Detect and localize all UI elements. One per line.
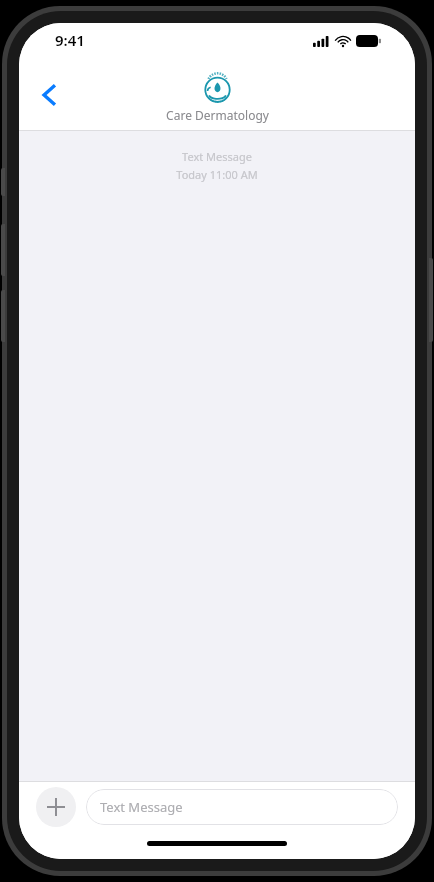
button[interactable]: Back: [27, 73, 71, 117]
button[interactable]: Care Dermatology: [166, 72, 269, 123]
button[interactable]: Add attachment: [36, 787, 76, 827]
button[interactable]: Text Message: [86, 789, 398, 825]
staticText: Text Message: [182, 149, 252, 164]
staticText: Text Message: [100, 798, 183, 816]
staticText: Care Dermatology: [166, 107, 269, 123]
staticText: 9:41: [55, 30, 85, 50]
staticText: Today 11:00 AM: [176, 167, 258, 182]
